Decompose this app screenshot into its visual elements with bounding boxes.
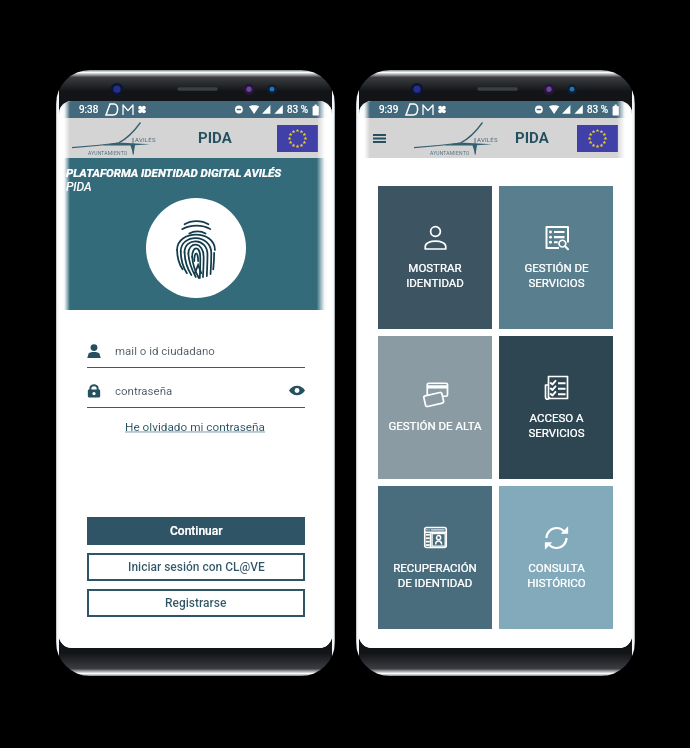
staticText: Registrarse — [165, 596, 227, 610]
staticText: MOSTRAR IDENTIDAD — [406, 261, 464, 290]
staticText: PIDA — [515, 129, 549, 147]
staticText: ACCESO A SERVICIOS — [528, 411, 585, 440]
button[interactable]: GESTIÓN DE SERVICIOS — [499, 186, 613, 329]
staticText: PIDA — [198, 129, 232, 147]
staticText: AVILÉS — [477, 136, 498, 143]
staticText: 83 % — [287, 104, 309, 116]
button[interactable]: European Union — [277, 125, 318, 152]
staticText: RECUPERACIÓN DE IDENTIDAD — [393, 561, 477, 590]
button[interactable]: European Union — [577, 125, 618, 152]
button[interactable]: ACCESO A SERVICIOS — [499, 336, 613, 479]
button[interactable]: MOSTRAR IDENTIDAD — [378, 186, 492, 329]
staticText: 83 % — [587, 104, 609, 116]
button[interactable]: Iniciar sesión con CL@VE — [87, 553, 305, 581]
staticText: AVILÉS — [135, 136, 156, 143]
button[interactable]: Continuar — [87, 517, 305, 545]
button[interactable]: Fingerprint login — [146, 198, 246, 298]
button[interactable]: Registrarse — [87, 589, 305, 617]
staticText: AYUNTAMIENTO — [430, 150, 470, 156]
staticText: PIDA — [66, 180, 92, 194]
staticText: CONSULTA HISTÓRICO — [527, 561, 586, 590]
button[interactable]: RECUPERACIÓN DE IDENTIDAD — [378, 486, 492, 629]
button[interactable]: GESTIÓN DE ALTA — [378, 336, 492, 479]
button[interactable]: Menu — [365, 124, 393, 152]
button[interactable]: He olvidado mi contraseña — [121, 419, 270, 435]
button[interactable]: mail o id ciudadano — [87, 334, 305, 367]
staticText: He olvidado mi contraseña — [125, 420, 266, 434]
staticText: 9:38 — [79, 104, 99, 116]
staticText: AYUNTAMIENTO — [88, 150, 128, 156]
staticText: PLATAFORMA IDENTIDAD DIGITAL AVILÉS — [66, 166, 282, 179]
staticText: Iniciar sesión con CL@VE — [128, 560, 265, 574]
button[interactable]: Show password — [288, 382, 305, 399]
staticText: GESTIÓN DE ALTA — [388, 419, 482, 432]
button[interactable]: contraseña — [87, 374, 305, 407]
staticText: mail o id ciudadano — [115, 344, 215, 357]
staticText: Continuar — [170, 524, 223, 538]
staticText: GESTIÓN DE SERVICIOS — [524, 261, 589, 290]
staticText: 9:39 — [379, 104, 399, 116]
button[interactable]: CONSULTA HISTÓRICO — [499, 486, 613, 629]
staticText: contraseña — [115, 384, 173, 397]
